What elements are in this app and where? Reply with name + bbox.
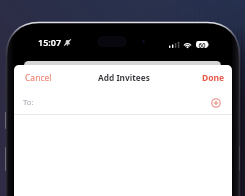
button[interactable]: To:	[14, 89, 232, 113]
staticText: Done	[202, 72, 225, 84]
staticText: Cancel	[25, 72, 52, 84]
staticText: 60	[198, 41, 206, 48]
staticText: To:	[23, 97, 34, 108]
button[interactable]: Done	[199, 68, 228, 88]
staticText: Add Invitees	[98, 72, 150, 83]
staticText: 15:07	[38, 36, 62, 48]
button[interactable]: Add contact	[209, 96, 222, 109]
button[interactable]: Cancel	[22, 68, 55, 88]
